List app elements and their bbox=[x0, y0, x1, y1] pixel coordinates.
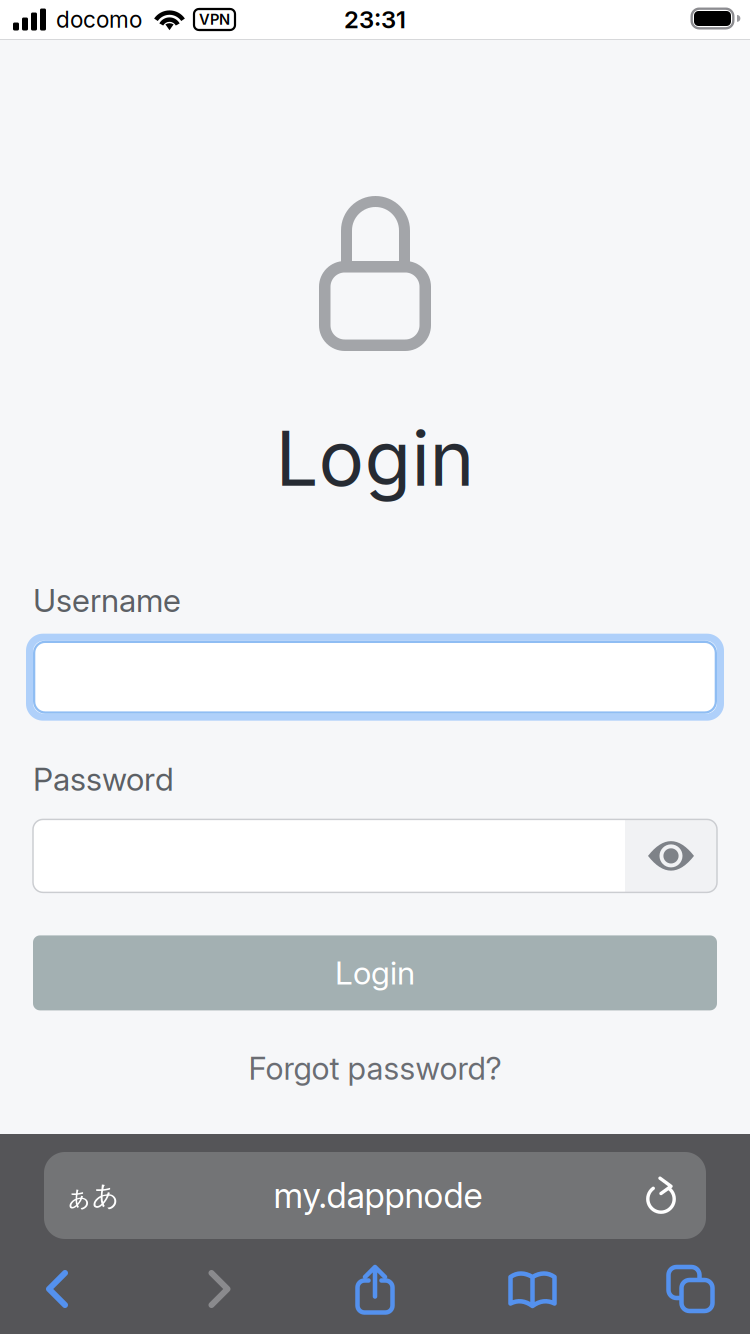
button[interactable]: Share bbox=[325, 1256, 425, 1322]
staticText: docomo bbox=[56, 6, 142, 33]
button[interactable]: Bookmarks bbox=[425, 1256, 640, 1322]
staticText: Login bbox=[275, 412, 474, 504]
staticText: 23:31 bbox=[344, 5, 406, 34]
button[interactable]: Back bbox=[0, 1256, 114, 1322]
staticText: Login bbox=[335, 953, 415, 992]
staticText: Username bbox=[33, 581, 181, 620]
button[interactable]: Show password bbox=[625, 819, 717, 892]
staticText: Password bbox=[33, 760, 174, 798]
staticText: my.dappnode bbox=[273, 1174, 482, 1216]
button[interactable]: Text size options bbox=[44, 1152, 140, 1239]
staticText: ぁあ bbox=[65, 1179, 119, 1212]
button[interactable]: Reload page bbox=[616, 1152, 706, 1239]
staticText: Forgot password? bbox=[248, 1049, 501, 1087]
button[interactable]: Forgot password? bbox=[239, 1040, 510, 1096]
staticText: VPN bbox=[199, 11, 230, 28]
button[interactable]: Tabs bbox=[640, 1256, 741, 1322]
button[interactable]: Login bbox=[33, 935, 717, 1010]
button[interactable]: Forward bbox=[114, 1256, 325, 1322]
